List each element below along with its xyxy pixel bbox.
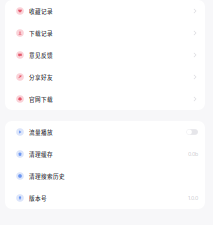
button[interactable]: 收藏记录 xyxy=(5,0,205,22)
staticText: 版本号 xyxy=(29,194,47,202)
staticText: 流量播放 xyxy=(29,128,53,136)
staticText: 0.0b xyxy=(188,151,198,157)
staticText: 清理缓存 xyxy=(29,150,53,158)
button[interactable]: 清理缓存 xyxy=(5,143,205,165)
staticText: 分享好友 xyxy=(29,73,53,81)
staticText: 下载记录 xyxy=(29,29,53,37)
button[interactable]: 清理搜索历史 xyxy=(5,165,205,187)
button[interactable]: 意见反馈 xyxy=(5,44,205,66)
staticText: 收藏记录 xyxy=(29,7,53,15)
button[interactable]: 分享好友 xyxy=(5,66,205,88)
button[interactable]: 版本号 xyxy=(5,187,205,209)
staticText: 1.0.0 xyxy=(188,195,198,201)
button[interactable]: 下载记录 xyxy=(5,22,205,44)
staticText: 意见反馈 xyxy=(29,51,53,59)
button[interactable]: 官网下载 xyxy=(5,88,205,110)
staticText: 官网下载 xyxy=(29,95,53,103)
staticText: 清理搜索历史 xyxy=(29,172,65,180)
button[interactable]: 流量播放 xyxy=(5,121,205,143)
